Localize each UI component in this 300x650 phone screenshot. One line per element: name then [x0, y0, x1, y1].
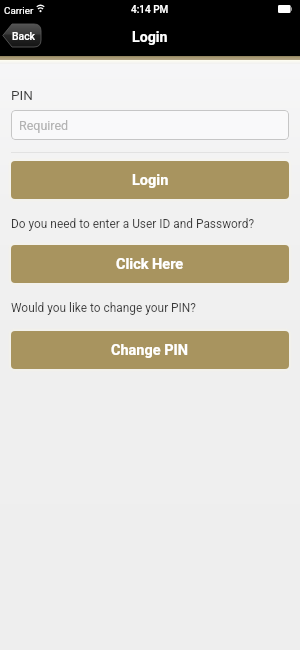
- button[interactable]: Required: [11, 110, 289, 140]
- button[interactable]: Click Here: [11, 245, 289, 283]
- staticText: Would you like to change your PIN?: [11, 301, 196, 315]
- staticText: Do you need to enter a User ID and Passw…: [11, 217, 255, 231]
- staticText: Change PIN: [111, 342, 189, 359]
- staticText: Click Here: [116, 256, 184, 273]
- staticText: Login: [132, 29, 168, 46]
- button[interactable]: Change PIN: [11, 331, 289, 369]
- staticText: Carrier: [4, 5, 34, 16]
- staticText: Required: [19, 118, 69, 133]
- button[interactable]: Login: [11, 161, 289, 199]
- button[interactable]: Back: [2, 23, 41, 48]
- staticText: Login: [132, 172, 169, 189]
- staticText: PIN: [11, 87, 33, 103]
- staticText: 4:14 PM: [131, 4, 169, 16]
- staticText: Back: [12, 30, 36, 42]
